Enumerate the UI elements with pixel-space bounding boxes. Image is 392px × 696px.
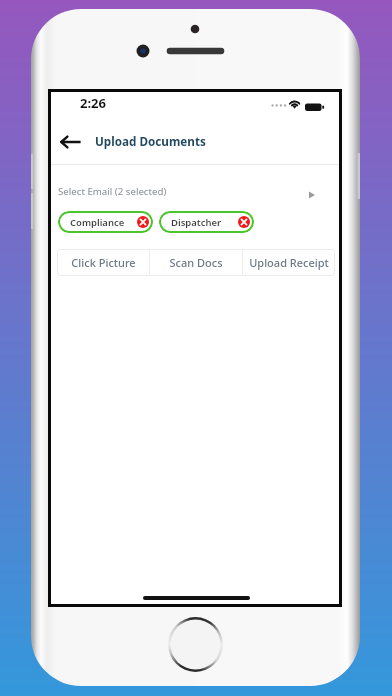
button[interactable]: Click Picture bbox=[57, 249, 149, 276]
staticText: Select Email (2 selected) bbox=[58, 185, 167, 198]
staticText: Scan Docs bbox=[169, 255, 223, 270]
button[interactable]: Upload Receipt bbox=[243, 249, 335, 276]
button[interactable]: Select Email (2 selected) bbox=[51, 180, 339, 202]
staticText: Click Picture bbox=[71, 255, 136, 270]
staticText: Upload Documents bbox=[95, 133, 206, 149]
button[interactable]: Scan Docs bbox=[150, 249, 242, 276]
staticText: 2:26 bbox=[80, 94, 106, 112]
button[interactable]: Dispatcher bbox=[159, 211, 254, 233]
button[interactable]: Remove Compliance bbox=[137, 216, 149, 228]
staticText: Compliance bbox=[70, 216, 125, 229]
button[interactable]: Remove Dispatcher bbox=[238, 216, 250, 228]
button[interactable]: Back bbox=[54, 126, 86, 158]
staticText: Dispatcher bbox=[171, 216, 222, 229]
button[interactable]: Compliance bbox=[58, 211, 153, 233]
staticText: Upload Receipt bbox=[249, 255, 329, 270]
